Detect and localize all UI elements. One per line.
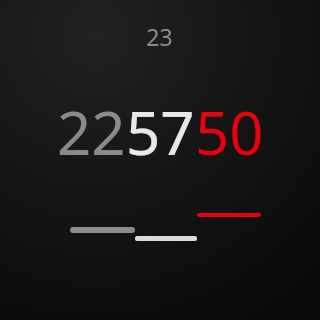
staticText: 50 xyxy=(195,91,264,173)
button[interactable]: 23 xyxy=(0,0,320,320)
button[interactable]: 22 xyxy=(0,91,320,173)
button[interactable]: Seconds progress xyxy=(197,213,261,217)
staticText: 23 xyxy=(146,21,173,52)
staticText: 22 xyxy=(57,91,126,173)
button[interactable]: Minutes progress xyxy=(135,236,197,241)
button[interactable]: 23 xyxy=(0,21,320,52)
staticText: 57 xyxy=(126,91,195,173)
button[interactable]: Hours progress xyxy=(70,227,135,233)
